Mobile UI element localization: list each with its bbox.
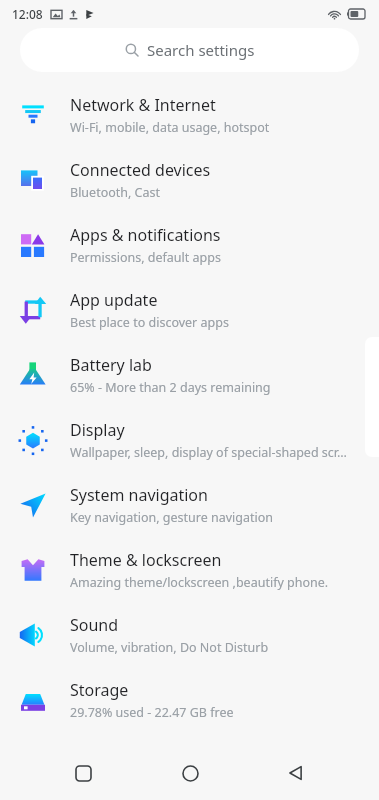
button[interactable]: Battery lab (0, 342, 379, 407)
staticText: Display (70, 419, 125, 441)
staticText: 12:08 (12, 6, 43, 22)
button[interactable]: Network & Internet (0, 82, 379, 147)
staticText: Wi-Fi, mobile, data usage, hotspot (70, 119, 270, 136)
staticText: Theme & lockscreen (70, 549, 222, 571)
staticText: Permissions, default apps (70, 249, 221, 266)
button[interactable]: App update (0, 277, 379, 342)
staticText: Storage (70, 679, 129, 701)
staticText: Best place to discover apps (70, 314, 229, 331)
staticText: Key navigation, gesture navigation (70, 509, 274, 526)
button[interactable]: Display (0, 407, 379, 472)
staticText: Connected devices (70, 159, 211, 181)
button[interactable]: Home (166, 749, 214, 797)
button[interactable]: Theme & lockscreen (0, 537, 379, 602)
staticText: 65% - More than 2 days remaining (70, 379, 271, 396)
button[interactable]: Connected devices (0, 147, 379, 212)
staticText: Bluetooth, Cast (70, 184, 161, 201)
staticText: Wallpaper, sleep, display of special-sha… (70, 444, 347, 461)
staticText: Network & Internet (70, 94, 216, 116)
button[interactable]: System navigation (0, 472, 379, 537)
staticText: Sound (70, 614, 119, 636)
staticText: System navigation (70, 484, 208, 506)
button[interactable]: Search settings (20, 28, 359, 72)
staticText: Volume, vibration, Do Not Disturb (70, 639, 269, 656)
staticText: Battery lab (70, 354, 152, 376)
button[interactable]: Apps & notifications (0, 212, 379, 277)
button[interactable]: Sound (0, 602, 379, 667)
staticText: App update (70, 289, 158, 311)
staticText: 29.78% used - 22.47 GB free (70, 704, 234, 721)
button[interactable]: Storage (0, 667, 379, 732)
staticText: Search settings (147, 40, 255, 60)
button[interactable]: Back (272, 749, 320, 797)
staticText: Apps & notifications (70, 224, 221, 246)
button[interactable]: Recents (59, 749, 107, 797)
staticText: Amazing theme/lockscreen ,beautify phone… (70, 574, 329, 591)
